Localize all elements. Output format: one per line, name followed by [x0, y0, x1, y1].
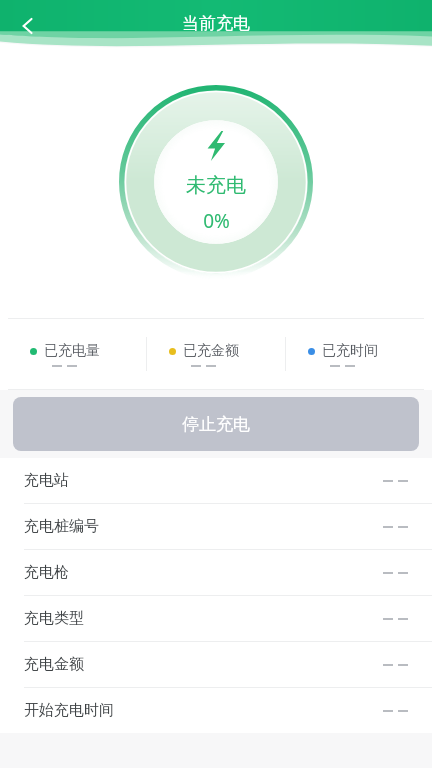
button[interactable]: 充电站 [0, 458, 432, 503]
button[interactable]: 已充金额 [147, 342, 285, 367]
button[interactable]: Back [6, 4, 50, 48]
staticText: 充电类型 [24, 609, 84, 628]
staticText: 充电枪 [24, 563, 69, 582]
staticText: 充电桩编号 [24, 517, 99, 536]
button[interactable]: 停止充电 [13, 397, 419, 451]
button[interactable]: 充电桩编号 [0, 504, 432, 549]
button[interactable]: 充电类型 [0, 596, 432, 641]
staticText: 开始充电时间 [24, 701, 114, 720]
button[interactable]: 充电枪 [0, 550, 432, 595]
staticText: 0% [203, 208, 230, 234]
staticText: 已充电量 [44, 342, 100, 360]
button[interactable]: 充电金额 [0, 642, 432, 687]
button[interactable]: 已充电量 [8, 342, 146, 367]
staticText: 已充时间 [322, 342, 378, 360]
button[interactable]: 已充时间 [286, 342, 424, 367]
staticText: 已充金额 [183, 342, 239, 360]
staticText: 未充电 [186, 173, 246, 198]
staticText: 充电金额 [24, 655, 84, 674]
staticText: 当前充电 [182, 13, 250, 34]
staticText: 充电站 [24, 471, 69, 490]
staticText: 停止充电 [182, 414, 250, 435]
button[interactable]: 开始充电时间 [0, 688, 432, 733]
